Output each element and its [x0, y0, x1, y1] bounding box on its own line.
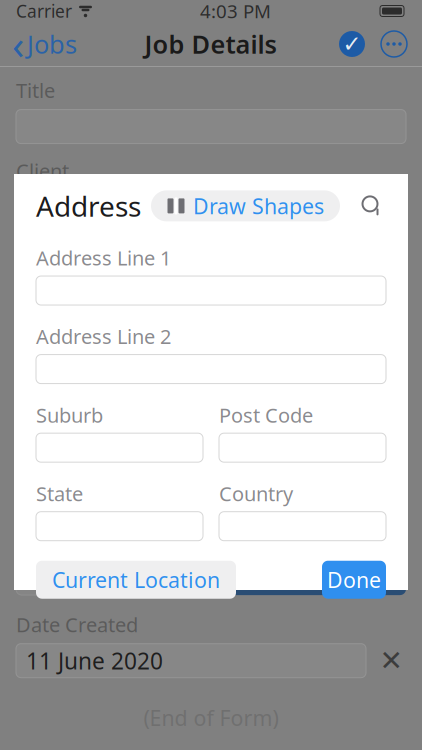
button[interactable]: Yes [16, 553, 207, 595]
staticText: No [295, 559, 326, 589]
staticText: Country [219, 480, 293, 507]
staticText: Jobs [27, 27, 77, 61]
button[interactable]: More options [372, 22, 416, 66]
staticText: ✕ [379, 645, 402, 677]
staticText: Draw Shapes [193, 192, 324, 220]
staticText: ✓ [342, 31, 361, 57]
staticText: Post Code [219, 402, 313, 428]
staticText: Current Location [52, 565, 220, 594]
staticText: 4:03 PM [200, 0, 271, 23]
button[interactable]: Draw Shapes [151, 190, 340, 221]
staticText: 11 June 2020 [26, 646, 163, 676]
staticText: Address Line 1 [36, 244, 171, 271]
staticText: State [36, 480, 83, 507]
button[interactable]: Save [332, 22, 372, 66]
staticText: Job Details [144, 27, 276, 61]
staticText: Carrier [16, 0, 72, 22]
staticText: ‹ [12, 17, 24, 70]
button[interactable]: Clear date [376, 644, 406, 678]
button[interactable]: No [215, 553, 406, 595]
staticText: Address [36, 187, 141, 224]
staticText: (End of Form) [143, 704, 278, 732]
staticText: Date Created [16, 611, 138, 638]
button[interactable]: Done [322, 561, 386, 599]
staticText: Title [16, 77, 55, 104]
staticText: Suburb [36, 402, 103, 428]
staticText: Address Line 2 [36, 323, 171, 350]
staticText: Client [16, 158, 69, 184]
staticText: Yes [93, 559, 129, 589]
button[interactable]: ‹ [0, 22, 89, 66]
button[interactable]: Current Location [36, 561, 236, 599]
button[interactable]: Search address [358, 190, 386, 221]
staticText: Done [327, 565, 381, 594]
